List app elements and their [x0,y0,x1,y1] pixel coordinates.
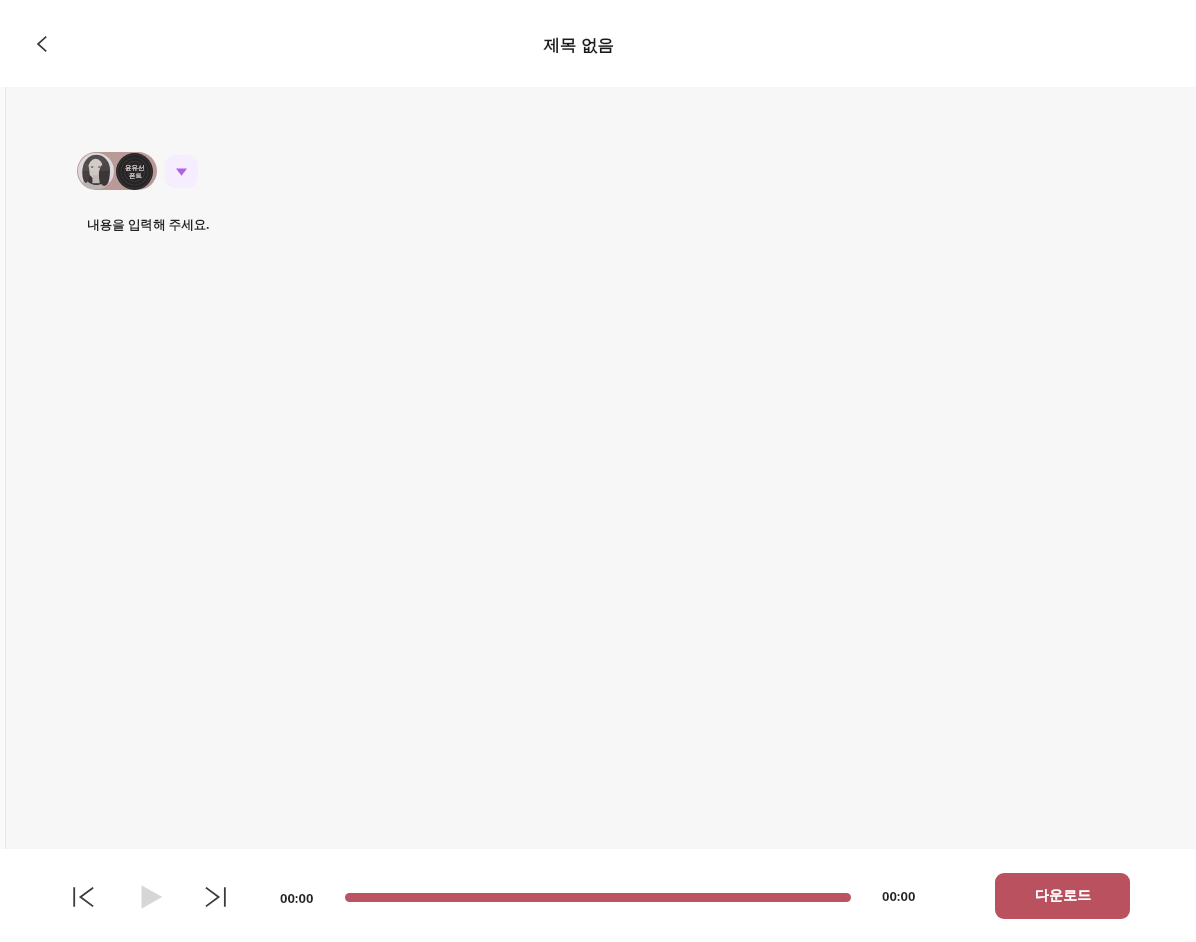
staticText: 00:00 [280,889,314,907]
button[interactable]: 끝으로 [196,877,236,917]
button[interactable]: 선택된 음성 [77,152,157,190]
button[interactable]: Back [20,22,64,66]
button[interactable]: 재생 위치 [345,893,851,902]
staticText: 00:00 [882,887,916,905]
staticText: 폰트 [129,172,142,180]
button[interactable]: 재생 [130,876,172,918]
staticText: 윤유선 [125,164,145,172]
button[interactable]: 처음으로 [62,877,102,917]
staticText: 내용을 입력해 주세요. [87,216,210,233]
staticText: 제목 없음 [543,33,614,56]
button[interactable]: 다운로드 [995,873,1130,919]
staticText: 다운로드 [1035,887,1091,905]
button[interactable]: 음성 선택 [165,155,198,188]
